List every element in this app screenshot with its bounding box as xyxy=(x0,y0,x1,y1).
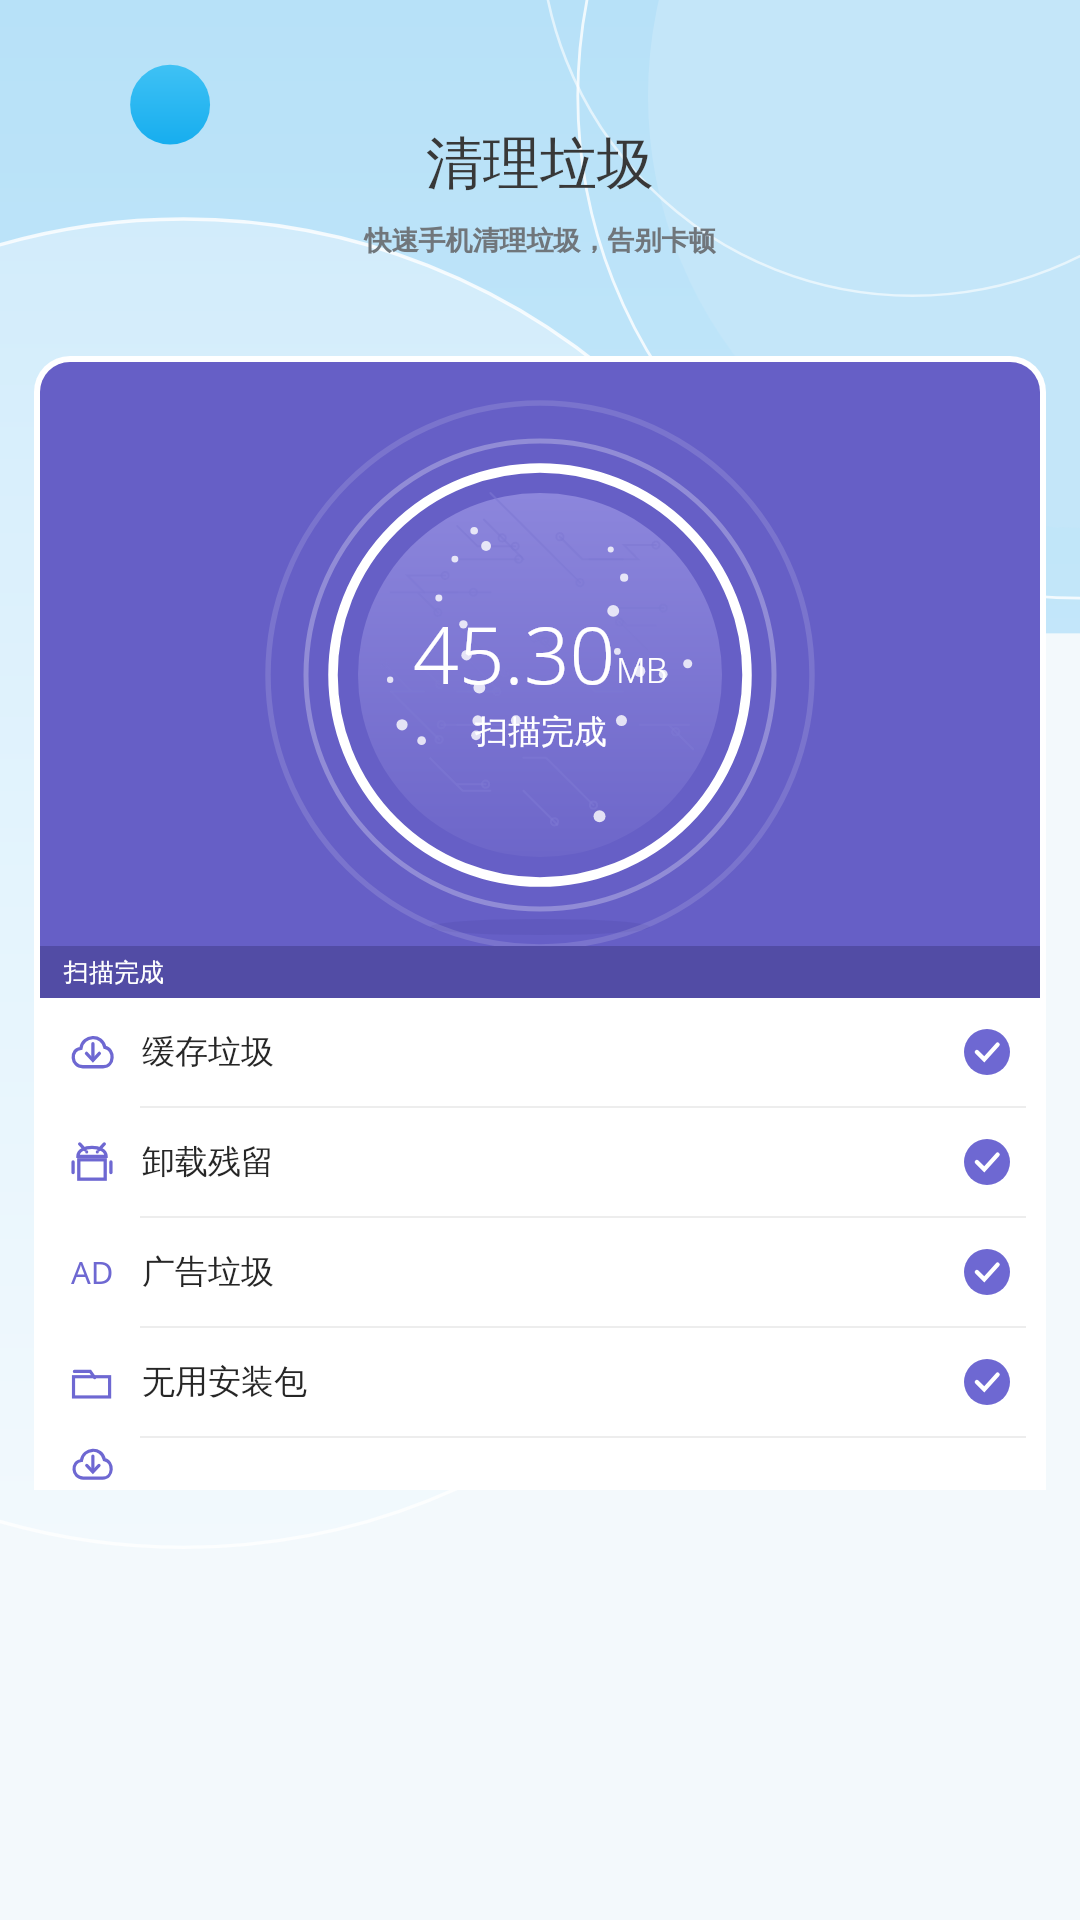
staticText: AD xyxy=(71,1251,114,1293)
button[interactable]: 缓存垃圾 xyxy=(40,998,1040,1108)
other: Selected xyxy=(964,1359,1010,1405)
button[interactable] xyxy=(40,1438,1040,1490)
staticText: 扫描完成 xyxy=(475,711,607,753)
button[interactable]: 卸载残留 xyxy=(40,1108,1040,1218)
other: Selected xyxy=(964,1249,1010,1295)
staticText: 45.30 xyxy=(413,598,616,707)
button[interactable]: AD xyxy=(40,1218,1040,1328)
other: Selected xyxy=(964,1029,1010,1075)
staticText: 广告垃圾 xyxy=(142,1251,274,1293)
staticText: 清理垃圾 xyxy=(0,128,1080,200)
button[interactable]: 无用安装包 xyxy=(40,1328,1040,1438)
staticText: MB xyxy=(616,647,668,693)
staticText: 无用安装包 xyxy=(142,1361,307,1403)
staticText: 缓存垃圾 xyxy=(142,1031,274,1073)
staticText: 扫描完成 xyxy=(64,957,164,988)
staticText: 卸载残留 xyxy=(142,1141,274,1183)
other: Selected xyxy=(964,1139,1010,1185)
staticText: 快速手机清理垃圾，告别卡顿 xyxy=(0,224,1080,258)
